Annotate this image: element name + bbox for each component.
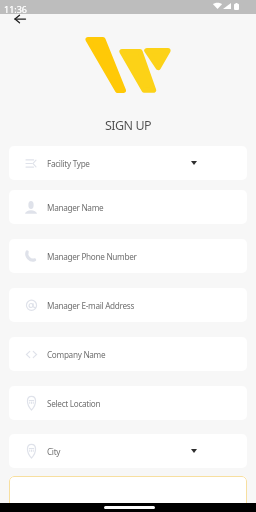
staticText: Facility Type — [47, 158, 90, 169]
button[interactable]: Select Location — [9, 386, 247, 420]
staticText: SIGN UP — [0, 117, 256, 134]
staticText: Manager Phone Number — [47, 251, 137, 262]
button[interactable]: Manager E-mail Address — [9, 288, 247, 322]
button[interactable]: Manager Phone Number — [9, 239, 247, 273]
staticText: City — [47, 446, 61, 457]
staticText: 11:36 — [4, 3, 28, 15]
staticText: Select Location — [47, 398, 101, 409]
staticText: Manager Name — [47, 202, 104, 213]
button[interactable]: City — [9, 434, 247, 468]
button[interactable]: Facility Type — [9, 146, 247, 180]
button[interactable] — [9, 476, 247, 510]
button[interactable]: Back — [9, 8, 31, 30]
button[interactable]: Company Name — [9, 337, 247, 371]
staticText: Manager E-mail Address — [47, 300, 135, 311]
staticText: Company Name — [47, 349, 106, 360]
button[interactable]: Manager Name — [9, 190, 247, 224]
